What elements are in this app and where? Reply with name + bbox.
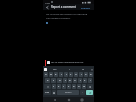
button[interactable]: r bbox=[59, 72, 63, 77]
staticText: can review it properly. bbox=[46, 16, 71, 19]
staticText: Report a comment bbox=[51, 5, 80, 9]
button[interactable]: Recent apps bbox=[80, 98, 84, 102]
button[interactable]: q bbox=[44, 72, 48, 77]
button[interactable]: w bbox=[49, 72, 53, 77]
staticText: English bbox=[65, 91, 72, 94]
staticText: u bbox=[75, 73, 77, 76]
staticText: I bbox=[69, 68, 70, 71]
button[interactable]: Voice input bbox=[90, 68, 93, 71]
button[interactable]: Space bbox=[57, 90, 79, 95]
staticText: x bbox=[58, 85, 60, 88]
staticText: f bbox=[65, 79, 66, 82]
staticText: s bbox=[53, 79, 55, 82]
staticText: ?123 bbox=[45, 91, 50, 94]
staticText: the bbox=[53, 68, 57, 71]
staticText: h bbox=[74, 79, 76, 82]
button[interactable]: Enter bbox=[86, 90, 93, 95]
button[interactable]: z bbox=[52, 84, 56, 89]
button[interactable]: h bbox=[73, 78, 77, 83]
staticText: k bbox=[84, 79, 86, 82]
button[interactable]: Home bbox=[67, 98, 71, 102]
button[interactable]: d bbox=[57, 78, 62, 83]
staticText: to bbox=[82, 68, 85, 71]
button[interactable]: n bbox=[77, 84, 81, 89]
staticText: t bbox=[66, 73, 67, 76]
button[interactable]: p bbox=[89, 72, 93, 77]
button[interactable]: y bbox=[69, 72, 73, 77]
button[interactable]: s bbox=[51, 78, 56, 83]
button[interactable]: Backspace bbox=[87, 84, 93, 89]
staticText: i bbox=[81, 73, 82, 76]
button[interactable]: I bbox=[62, 67, 76, 71]
button[interactable]: Selected option bbox=[46, 22, 91, 24]
staticText: p bbox=[90, 73, 92, 76]
staticText: SUBMIT bbox=[81, 6, 91, 9]
button[interactable]: g bbox=[68, 78, 72, 83]
staticText: 7:05 bbox=[45, 1, 50, 4]
button[interactable]: m bbox=[82, 84, 86, 89]
staticText: j bbox=[80, 79, 81, 82]
button[interactable]: Shift bbox=[44, 84, 51, 89]
button[interactable]: o bbox=[84, 72, 88, 77]
staticText: l bbox=[90, 79, 91, 82]
staticText: . bbox=[82, 91, 83, 94]
button[interactable]: a bbox=[45, 78, 50, 83]
button[interactable]: c bbox=[62, 84, 66, 89]
staticText: d bbox=[59, 79, 61, 82]
button[interactable]: to bbox=[76, 67, 90, 71]
button[interactable]: k bbox=[83, 78, 87, 83]
button[interactable]: i bbox=[79, 72, 83, 77]
button[interactable]: l bbox=[88, 78, 92, 83]
staticText: v bbox=[68, 85, 70, 88]
staticText: y bbox=[70, 73, 72, 76]
staticText: c bbox=[63, 85, 65, 88]
staticText: e bbox=[55, 73, 57, 76]
button[interactable]: u bbox=[74, 72, 78, 77]
button[interactable]: Back bbox=[53, 98, 57, 102]
button[interactable]: the bbox=[48, 67, 62, 71]
button[interactable]: t bbox=[64, 72, 68, 77]
button[interactable]: SUBMIT bbox=[80, 5, 92, 10]
staticText: r bbox=[61, 73, 62, 76]
button[interactable]: . bbox=[80, 90, 85, 95]
staticText: a bbox=[47, 79, 49, 82]
button[interactable]: f bbox=[63, 78, 67, 83]
button[interactable]: j bbox=[78, 78, 82, 83]
button[interactable]: Emoji bbox=[52, 90, 56, 95]
staticText: w bbox=[50, 73, 52, 76]
button[interactable]: Back bbox=[45, 5, 50, 10]
staticText: q bbox=[45, 73, 47, 76]
button[interactable]: Google search bbox=[44, 68, 47, 71]
button[interactable]: ?123 bbox=[44, 90, 51, 95]
staticText: o bbox=[85, 73, 87, 76]
button[interactable]: v bbox=[67, 84, 71, 89]
button[interactable]: b bbox=[72, 84, 76, 89]
other: Selected option bbox=[46, 22, 48, 24]
staticText: Tell us what happened with this comment bbox=[51, 61, 93, 64]
button[interactable]: x bbox=[57, 84, 61, 89]
staticText: g bbox=[69, 79, 71, 82]
staticText: Let us know the reason for reporting thi… bbox=[46, 12, 91, 15]
staticText: m bbox=[83, 85, 86, 88]
staticText: b bbox=[73, 85, 75, 88]
staticText: n bbox=[78, 85, 80, 88]
staticText: z bbox=[53, 85, 55, 88]
button[interactable]: e bbox=[54, 72, 58, 77]
